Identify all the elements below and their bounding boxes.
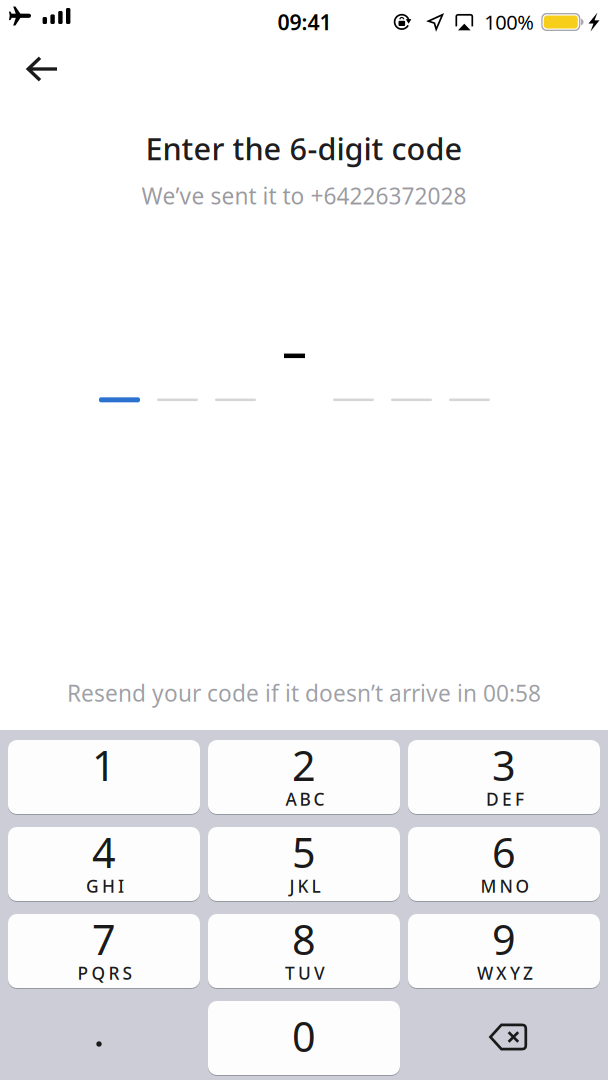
- staticText: 7: [92, 912, 116, 966]
- staticText: DEF: [486, 787, 524, 810]
- staticText: JKL: [289, 874, 320, 897]
- button[interactable]: 5: [208, 827, 400, 901]
- staticText: 1: [92, 738, 116, 792]
- button[interactable]: Period: [8, 1001, 200, 1075]
- staticText: Enter the 6-digit code: [145, 128, 462, 169]
- button[interactable]: 3: [408, 740, 600, 814]
- staticText: Resend your code if it doesn’t arrive in…: [67, 678, 541, 708]
- staticText: 09:41: [277, 8, 331, 36]
- button[interactable]: 2: [208, 740, 400, 814]
- staticText: 3: [492, 738, 516, 792]
- button[interactable]: Delete: [408, 1001, 600, 1075]
- staticText: 100%: [484, 9, 534, 35]
- staticText: 9: [492, 912, 516, 966]
- button[interactable]: 6: [408, 827, 600, 901]
- staticText: WXYZ: [477, 961, 533, 984]
- button[interactable]: 0: [208, 1001, 400, 1075]
- staticText: 5: [292, 825, 316, 879]
- staticText: 6: [492, 825, 516, 879]
- staticText: ABC: [285, 787, 324, 810]
- staticText: 4: [92, 825, 116, 879]
- button[interactable]: 4: [8, 827, 200, 901]
- button[interactable]: 9: [408, 914, 600, 988]
- button[interactable]: Back: [14, 45, 70, 93]
- staticText: GHI: [86, 874, 124, 897]
- staticText: TUV: [285, 961, 325, 984]
- staticText: We’ve sent it to +64226372028: [141, 181, 466, 211]
- staticText: 2: [292, 738, 316, 792]
- staticText: 0: [292, 1009, 316, 1063]
- staticText: PQRS: [77, 961, 132, 984]
- staticText: MNO: [480, 874, 529, 897]
- staticText: 8: [292, 912, 316, 966]
- button[interactable]: 1: [8, 740, 200, 814]
- button[interactable]: 8: [208, 914, 400, 988]
- button[interactable]: 7: [8, 914, 200, 988]
